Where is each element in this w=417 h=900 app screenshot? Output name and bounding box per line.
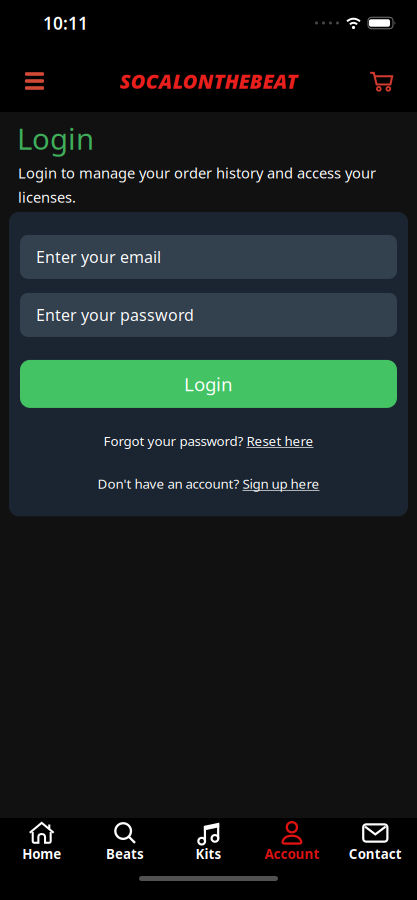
button[interactable] bbox=[369, 70, 417, 92]
button[interactable]: Beats bbox=[83, 821, 167, 863]
staticText: Don't have an account? Sign up here bbox=[97, 475, 319, 492]
staticText: Home bbox=[22, 845, 61, 863]
button[interactable]: Don't have an account? Sign up here bbox=[97, 475, 319, 492]
button[interactable]: Enter your password bbox=[20, 293, 397, 337]
button[interactable]: Account bbox=[250, 821, 334, 863]
staticText: Beats bbox=[106, 845, 144, 863]
staticText: Login bbox=[17, 119, 94, 158]
staticText: Login bbox=[184, 371, 233, 396]
staticText: 10:11 bbox=[43, 11, 88, 34]
button[interactable]: Enter your email bbox=[20, 235, 397, 279]
button[interactable]: Login bbox=[20, 360, 397, 408]
staticText: Forgot your password? Reset here bbox=[103, 432, 313, 450]
button[interactable]: Kits bbox=[167, 821, 250, 863]
button[interactable]: Forgot your password? Reset here bbox=[103, 432, 313, 450]
button[interactable] bbox=[0, 72, 44, 90]
staticText: Contact bbox=[349, 845, 402, 863]
staticText: Enter your email bbox=[36, 246, 161, 267]
staticText: Login to manage your order history and a… bbox=[18, 163, 376, 207]
button[interactable]: Home bbox=[0, 821, 83, 863]
button[interactable]: Contact bbox=[334, 821, 417, 863]
staticText: Kits bbox=[195, 845, 221, 863]
staticText: Enter your password bbox=[36, 304, 194, 325]
staticText: SOCALONTHEBEAT bbox=[119, 68, 297, 94]
staticText: Account bbox=[264, 845, 319, 863]
